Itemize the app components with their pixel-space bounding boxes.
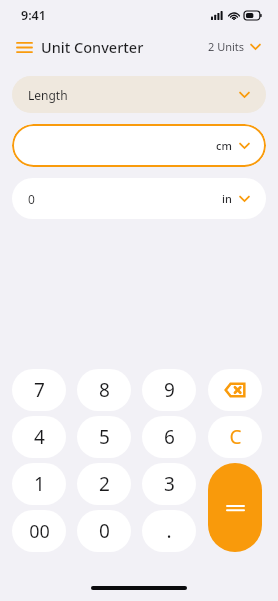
staticText: cm xyxy=(216,138,232,153)
staticText: 4 xyxy=(34,424,45,450)
button[interactable]: Backspace xyxy=(208,369,262,411)
staticText: 2 Units xyxy=(208,39,245,54)
staticText: 1 xyxy=(34,471,45,497)
button[interactable]: Equals xyxy=(208,463,262,552)
staticText: 2 xyxy=(99,471,110,497)
button[interactable]: 4 xyxy=(12,416,66,458)
button[interactable]: 2 xyxy=(77,463,131,505)
staticText: C xyxy=(229,424,242,450)
button[interactable]: 0 xyxy=(77,510,131,552)
button[interactable]: 00 xyxy=(12,510,66,552)
button[interactable]: 8 xyxy=(77,369,131,411)
staticText: 0 xyxy=(28,191,35,207)
staticText: 9 xyxy=(164,377,175,403)
button[interactable]: 1 xyxy=(12,463,66,505)
button[interactable]: 2 Units xyxy=(204,35,265,58)
button[interactable]: C xyxy=(208,416,262,458)
staticText: 7 xyxy=(34,377,45,403)
staticText: 9:41 xyxy=(21,7,46,24)
button[interactable]: 0 xyxy=(12,178,266,219)
button[interactable]: cm xyxy=(12,124,266,167)
staticText: Length xyxy=(28,87,68,103)
staticText: 00 xyxy=(29,519,50,544)
button[interactable]: 5 xyxy=(77,416,131,458)
staticText: 8 xyxy=(99,377,110,403)
button[interactable]: Menu xyxy=(10,33,38,61)
staticText: 0 xyxy=(99,518,110,544)
staticText: 6 xyxy=(164,424,175,450)
staticText: 5 xyxy=(99,424,110,450)
button[interactable]: 3 xyxy=(142,463,196,505)
button[interactable]: . xyxy=(142,510,196,552)
button[interactable]: Length xyxy=(12,76,266,113)
button[interactable]: 6 xyxy=(142,416,196,458)
staticText: 3 xyxy=(164,471,175,497)
button[interactable]: 7 xyxy=(12,369,66,411)
staticText: in xyxy=(222,191,232,206)
button[interactable]: 9 xyxy=(142,369,196,411)
staticText: Unit Converter xyxy=(41,37,144,57)
staticText: . xyxy=(166,518,172,544)
